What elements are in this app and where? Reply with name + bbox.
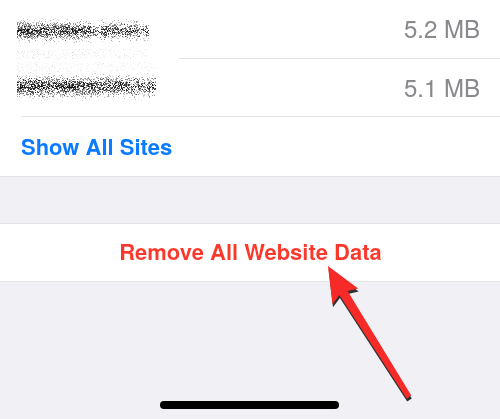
button[interactable]: Website data entry, 5.1 MB [0, 59, 500, 116]
staticText: 5.2 MB [404, 10, 481, 44]
button[interactable]: Remove All Website Data [0, 224, 500, 281]
button[interactable]: Show All Sites [0, 117, 500, 176]
button[interactable]: Website data entry, 5.2 MB [0, 0, 500, 58]
staticText: 5.1 MB [404, 69, 481, 103]
staticText: Show All Sites [21, 130, 173, 162]
staticText: Remove All Website Data [119, 235, 382, 267]
